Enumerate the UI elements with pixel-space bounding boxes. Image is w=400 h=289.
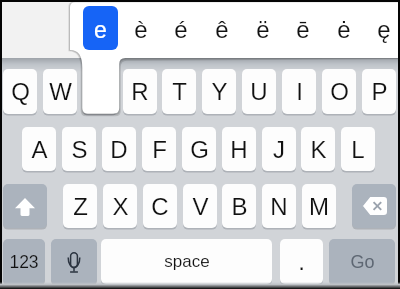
staticText: M	[309, 193, 329, 220]
button[interactable]: Shift	[3, 184, 47, 228]
button[interactable]: N	[262, 184, 296, 228]
button[interactable]: X	[103, 184, 137, 228]
staticText: Z	[73, 193, 88, 220]
button[interactable]: ė	[326, 6, 361, 50]
staticText: G	[190, 136, 209, 163]
staticText: V	[192, 193, 209, 220]
staticText: é	[174, 16, 188, 43]
button[interactable]: Backspace	[352, 184, 396, 228]
staticText: X	[112, 193, 129, 220]
button[interactable]: e	[83, 6, 118, 50]
button[interactable]: V	[183, 184, 217, 228]
staticText: 123	[9, 252, 39, 272]
staticText: Go	[350, 252, 375, 272]
button[interactable]: T	[162, 69, 196, 114]
staticText: ė	[337, 16, 351, 43]
staticText: A	[31, 136, 48, 163]
button[interactable]: H	[222, 127, 256, 171]
button[interactable]: S	[62, 127, 96, 171]
staticText: D	[110, 136, 128, 163]
staticText: W	[49, 78, 72, 105]
staticText: N	[270, 193, 288, 220]
button[interactable]: A	[22, 127, 56, 171]
button[interactable]: U	[242, 69, 276, 114]
staticText: K	[310, 136, 327, 163]
staticText: ē	[296, 16, 310, 43]
button[interactable]: D	[102, 127, 136, 171]
staticText: P	[371, 78, 388, 105]
staticText: .	[298, 248, 305, 275]
button[interactable]: M	[302, 184, 336, 228]
staticText: ë	[256, 16, 270, 43]
staticText: S	[71, 136, 88, 163]
staticText: O	[330, 78, 349, 105]
staticText: F	[152, 136, 167, 163]
button[interactable]: .	[280, 239, 323, 284]
button[interactable]: é	[163, 6, 198, 50]
button[interactable]: W	[43, 69, 77, 114]
staticText: H	[230, 136, 248, 163]
button[interactable]: space	[101, 239, 272, 284]
button[interactable]: Y	[202, 69, 236, 114]
staticText: T	[172, 78, 187, 105]
staticText: C	[151, 193, 169, 220]
staticText: e	[94, 17, 107, 43]
staticText: ę	[377, 16, 391, 43]
button[interactable]: ê	[204, 6, 239, 50]
button[interactable]: Go	[329, 239, 395, 284]
staticText: L	[351, 136, 365, 163]
button[interactable]: E	[83, 69, 117, 114]
button[interactable]: Dictation	[51, 239, 97, 284]
button[interactable]: ë	[245, 6, 280, 50]
staticText: R	[131, 78, 149, 105]
button[interactable]: O	[322, 69, 356, 114]
button[interactable]: 123	[3, 239, 45, 284]
button[interactable]: J	[262, 127, 296, 171]
button[interactable]: ę	[366, 6, 400, 50]
button[interactable]: C	[143, 184, 177, 228]
staticText: J	[273, 136, 285, 163]
button[interactable]: è	[123, 6, 158, 50]
staticText: U	[250, 78, 268, 105]
button[interactable]: P	[362, 69, 396, 114]
button[interactable]: Z	[63, 184, 97, 228]
staticText: Q	[11, 78, 30, 105]
staticText: Y	[211, 78, 228, 105]
staticText: B	[231, 193, 248, 220]
button[interactable]: G	[182, 127, 216, 171]
button[interactable]: F	[142, 127, 176, 171]
button[interactable]: Q	[3, 69, 37, 114]
staticText: ê	[215, 16, 229, 43]
button[interactable]: L	[341, 127, 375, 171]
button[interactable]: K	[301, 127, 335, 171]
staticText: I	[296, 78, 303, 105]
staticText: space	[164, 252, 210, 271]
button[interactable]: R	[123, 69, 157, 114]
staticText: è	[134, 16, 148, 43]
button[interactable]: ē	[285, 6, 320, 50]
button[interactable]: B	[222, 184, 256, 228]
button[interactable]: I	[282, 69, 316, 114]
